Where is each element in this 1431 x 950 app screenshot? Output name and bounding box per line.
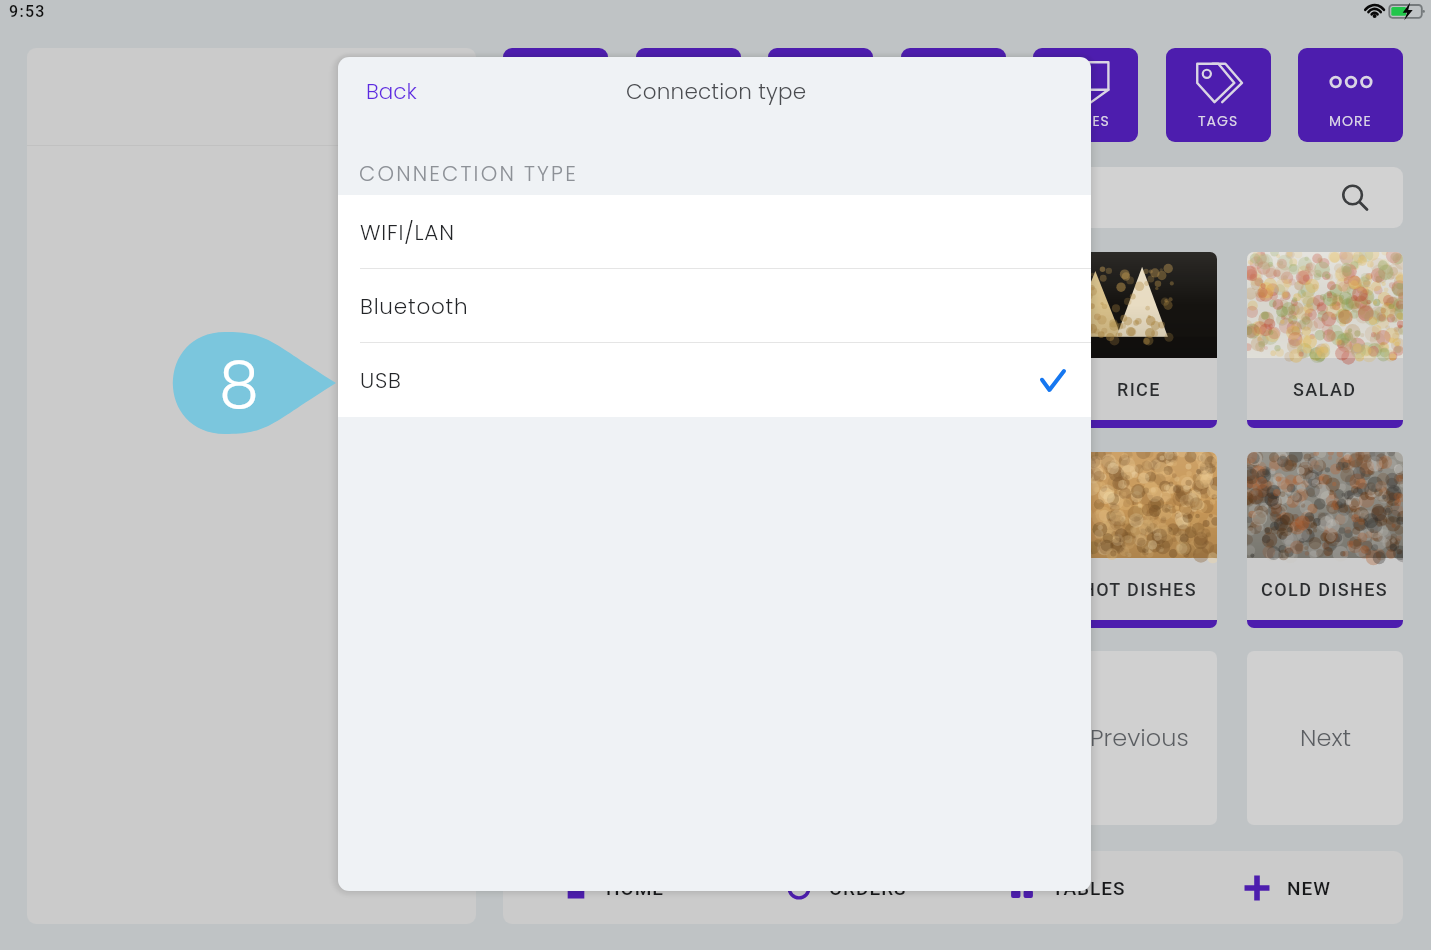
button[interactable]: SALAD bbox=[1247, 252, 1403, 428]
button[interactable]: USB bbox=[338, 343, 1091, 417]
button[interactable]: Next bbox=[1247, 651, 1403, 825]
staticText: USB bbox=[360, 365, 402, 395]
staticText: HOME bbox=[606, 877, 665, 899]
staticText: TABLES bbox=[1052, 877, 1126, 899]
staticText: Next bbox=[1300, 721, 1351, 755]
button[interactable]: BREAKFAST bbox=[689, 252, 845, 428]
staticText: HOT DISHES bbox=[1082, 579, 1197, 600]
staticText: COLD DISHES bbox=[1261, 579, 1389, 600]
button[interactable]: SPLIT bbox=[636, 48, 741, 142]
staticText: SALAD bbox=[1293, 379, 1357, 400]
button[interactable]: RICE bbox=[1061, 252, 1217, 428]
button[interactable]: TABLES bbox=[1009, 851, 1126, 924]
button[interactable]: PAY bbox=[768, 48, 873, 142]
staticText: 9:53 bbox=[9, 2, 46, 21]
staticText: Back bbox=[366, 76, 417, 106]
button[interactable]: MORE bbox=[1298, 48, 1403, 142]
button[interactable]: SOUP bbox=[503, 252, 659, 428]
staticText: Bluetooth bbox=[360, 291, 469, 321]
button[interactable]: PRINT bbox=[901, 48, 1006, 142]
button[interactable]: HOT DISHES bbox=[1061, 452, 1217, 628]
button[interactable]: WIFI/LAN bbox=[338, 195, 1091, 269]
staticText: ORDERS bbox=[829, 877, 907, 899]
staticText: NEW bbox=[1287, 877, 1331, 899]
button[interactable]: COLD DISHES bbox=[1247, 452, 1403, 628]
button[interactable]: BURGERS bbox=[875, 252, 1031, 428]
button[interactable]: NEW bbox=[1244, 851, 1331, 924]
button[interactable]: ORDERS bbox=[786, 851, 907, 924]
button[interactable]: Back bbox=[353, 66, 430, 116]
button[interactable]: TAGS bbox=[1166, 48, 1271, 142]
button[interactable]: HOME bbox=[563, 851, 665, 924]
button[interactable]: NOTES bbox=[1033, 48, 1138, 142]
button[interactable]: Bluetooth bbox=[338, 269, 1091, 343]
staticText: 8 bbox=[219, 341, 259, 431]
staticText: Connection type bbox=[626, 76, 807, 106]
staticText: NOTES bbox=[1061, 111, 1110, 131]
staticText: Previous bbox=[1090, 721, 1189, 755]
button[interactable]: Previous bbox=[1061, 651, 1217, 825]
staticText: CONNECTION TYPE bbox=[359, 159, 578, 188]
staticText: MORE bbox=[1329, 111, 1372, 131]
button[interactable]: MENU bbox=[503, 48, 608, 142]
button[interactable]: Search bbox=[503, 167, 1403, 228]
staticText: WIFI/LAN bbox=[360, 217, 455, 247]
staticText: RICE bbox=[1117, 379, 1161, 400]
staticText: TAGS bbox=[1198, 111, 1239, 131]
